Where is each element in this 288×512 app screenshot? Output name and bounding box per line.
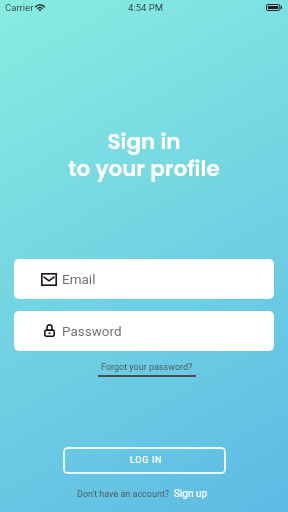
button[interactable]: Email xyxy=(14,259,274,299)
staticText: LOG IN xyxy=(130,455,163,466)
button[interactable]: LOG IN xyxy=(63,447,226,474)
button[interactable]: Sign up xyxy=(174,488,208,500)
staticText: Don't have an account? xyxy=(77,489,170,500)
staticText: Forgot your password? xyxy=(101,362,193,373)
staticText: Sign up xyxy=(174,488,208,500)
staticText: Email xyxy=(62,271,96,287)
button[interactable]: Forgot your password? xyxy=(98,362,196,377)
staticText: Sign in to your profile xyxy=(68,126,220,183)
button[interactable]: Password xyxy=(14,311,274,351)
staticText: Carrier xyxy=(5,2,34,13)
staticText: 4:54 PM xyxy=(128,2,163,13)
staticText: Password xyxy=(62,323,122,339)
